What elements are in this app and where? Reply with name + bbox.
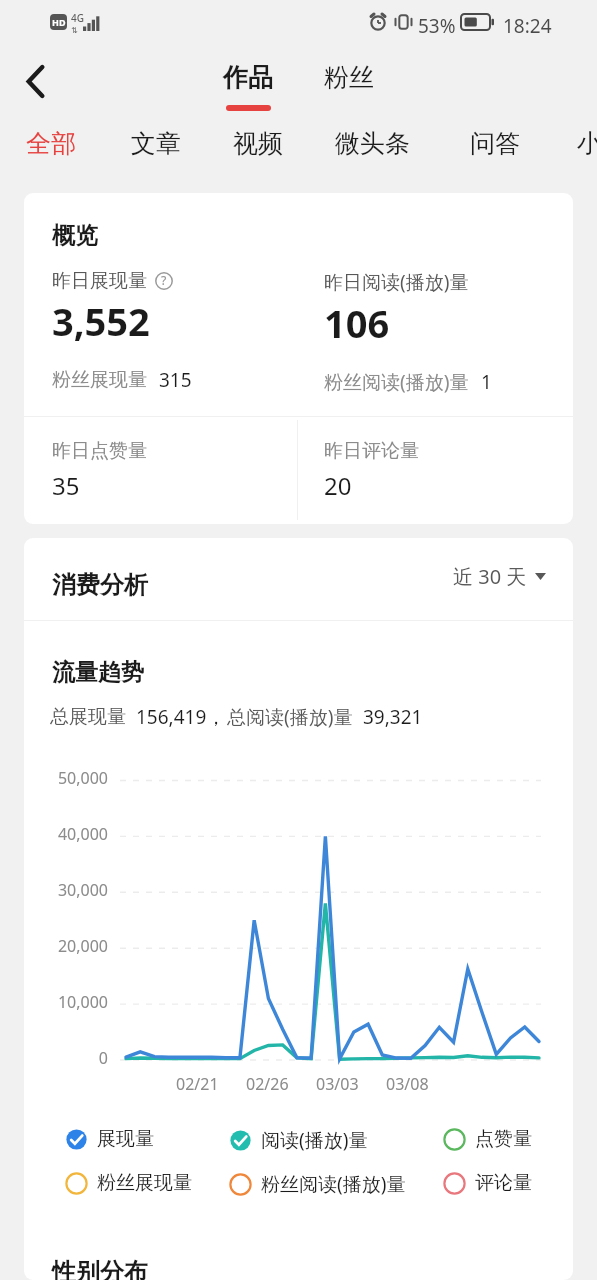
staticText: 近 30 天	[453, 563, 527, 590]
staticText: 1	[481, 369, 492, 395]
staticText: 03/08	[386, 1073, 429, 1095]
staticText: 20,000	[24, 935, 108, 957]
staticText: 39,321	[363, 704, 423, 730]
staticText: 昨日展现量	[52, 269, 147, 293]
button[interactable]: 全部	[12, 119, 90, 168]
staticText: 点赞量	[475, 1127, 532, 1151]
staticText: ⇅	[71, 26, 78, 35]
staticText: 40,000	[24, 823, 108, 845]
staticText: 作品	[223, 62, 273, 93]
staticText: 微头条	[335, 128, 410, 159]
staticText: 02/26	[246, 1073, 289, 1095]
staticText: 106	[324, 297, 390, 349]
staticText: 评论量	[475, 1171, 532, 1195]
button[interactable]: 点赞量	[443, 1123, 532, 1155]
staticText: 03/03	[316, 1073, 359, 1095]
staticText: 总阅读(播放)量	[227, 704, 353, 730]
staticText: 粉丝阅读(播放)量	[324, 369, 469, 395]
button[interactable]: 文章	[117, 119, 195, 168]
button[interactable]: 展现量	[65, 1123, 154, 1155]
staticText: 消费分析	[52, 570, 148, 600]
staticText: 视频	[233, 128, 283, 159]
staticText: 昨日阅读(播放)量	[324, 269, 469, 295]
staticText: 昨日点赞量	[52, 439, 147, 463]
staticText: 粉丝展现量	[97, 1171, 192, 1195]
button[interactable]: 评论量	[443, 1167, 532, 1199]
staticText: 文章	[131, 128, 181, 159]
staticText: HD	[52, 16, 66, 28]
staticText: 0	[24, 1047, 108, 1069]
staticText: 20	[324, 469, 352, 502]
staticText: 10,000	[24, 991, 108, 1013]
staticText: 粉丝展现量	[52, 368, 147, 392]
button[interactable]: 小视频	[563, 119, 597, 168]
button[interactable]: 近 30 天	[449, 557, 550, 596]
button[interactable]: 问答	[456, 119, 534, 168]
staticText: 53%	[418, 13, 456, 39]
staticText: 粉丝阅读(播放)量	[261, 1171, 406, 1197]
staticText: 粉丝	[324, 62, 374, 93]
staticText: 315	[159, 367, 192, 393]
staticText: 50,000	[24, 767, 108, 789]
staticText: 问答	[470, 128, 520, 159]
staticText: 总展现量	[50, 705, 126, 729]
staticText: 展现量	[97, 1127, 154, 1151]
staticText: 18:24	[503, 13, 552, 39]
staticText: 流量趋势	[52, 658, 144, 687]
button[interactable]: 作品	[215, 58, 281, 115]
button[interactable]: 视频	[219, 119, 297, 168]
staticText: 156,419，	[136, 704, 226, 730]
button[interactable]: Back	[11, 57, 59, 105]
staticText: 全部	[26, 128, 76, 159]
staticText: 性别分布	[52, 1257, 148, 1280]
button[interactable]: 粉丝	[316, 58, 382, 97]
button[interactable]: 阅读(播放)量	[229, 1123, 368, 1157]
button[interactable]: 微头条	[321, 119, 424, 168]
staticText: 概览	[52, 221, 98, 250]
staticText: 4G	[71, 11, 84, 25]
button[interactable]: 粉丝展现量	[65, 1167, 192, 1199]
staticText: 30,000	[24, 879, 108, 901]
staticText: 小视频	[577, 128, 597, 159]
button[interactable]: 粉丝阅读(播放)量	[229, 1167, 406, 1201]
staticText: 昨日评论量	[324, 439, 419, 463]
staticText: 阅读(播放)量	[261, 1127, 368, 1153]
staticText: ?	[161, 272, 167, 288]
staticText: 3,552	[52, 295, 150, 347]
staticText: 02/21	[176, 1073, 219, 1095]
staticText: 35	[52, 469, 80, 502]
